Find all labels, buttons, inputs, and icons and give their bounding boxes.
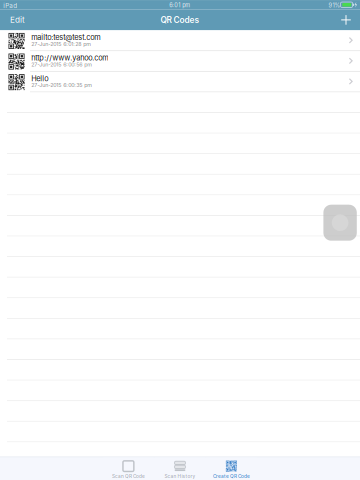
button[interactable]: Edit [0, 10, 36, 30]
staticText: iPad [3, 2, 17, 9]
button[interactable]: mailto:test@test.com [0, 31, 360, 51]
staticText: 27-Jun-2015 6:01:28 pm [31, 41, 91, 47]
button[interactable]: Scan QR Code [103, 457, 153, 480]
staticText: Scan QR Code [112, 473, 145, 479]
staticText: Hello [31, 74, 48, 83]
button[interactable]: AssistiveTouch [323, 205, 357, 241]
staticText: 27-Jun-2015 6:00:56 pm [31, 61, 92, 68]
staticText: mailto:test@test.com [31, 33, 100, 42]
staticText: Scan History [164, 473, 195, 479]
staticText: QR Codes [160, 15, 199, 25]
button[interactable]: Hello [0, 72, 360, 92]
button[interactable]: http://www.yahoo.com [0, 51, 360, 72]
staticText: 91% [329, 2, 341, 9]
button[interactable]: Create QR Code [206, 457, 256, 480]
button[interactable]: Scan History [155, 457, 205, 480]
staticText: Edit [10, 15, 25, 25]
button[interactable]: Add QR Code [336, 10, 356, 30]
staticText: Create QR Code [213, 473, 250, 479]
staticText: http://www.yahoo.com [31, 53, 108, 62]
staticText: 27-Jun-2015 6:00:35 pm [31, 82, 92, 88]
staticText: 6:01 pm [169, 2, 190, 8]
